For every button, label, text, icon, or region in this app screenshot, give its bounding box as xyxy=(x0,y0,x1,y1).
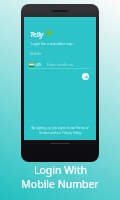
staticText: Telly xyxy=(30,30,44,40)
staticText: Service and our Privacy Policy. xyxy=(39,131,82,135)
staticText: Login With xyxy=(34,163,87,177)
staticText: Mobile xyxy=(30,51,42,56)
staticText: Mobile Number xyxy=(21,177,99,191)
staticText: By signing up, you agree to our Terms of xyxy=(31,126,89,130)
staticText: +91 xyxy=(35,62,42,67)
staticText: Enter mobile no. xyxy=(47,62,75,67)
staticText: Login for a smoother exp. xyxy=(31,41,74,46)
button[interactable]: Continue xyxy=(82,73,89,80)
